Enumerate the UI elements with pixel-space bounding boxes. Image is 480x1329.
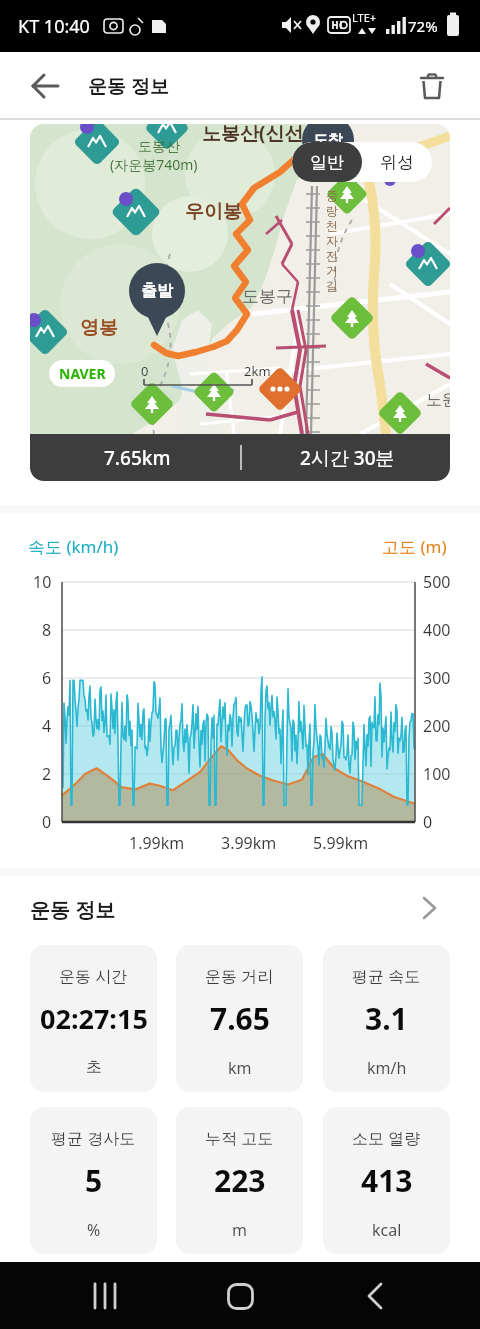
staticText: 2시간 30분 bbox=[300, 445, 395, 471]
staticText: (자운봉740m) bbox=[110, 155, 198, 174]
button[interactable]: 위성 bbox=[362, 142, 432, 182]
staticText: 운동 정보 bbox=[30, 896, 116, 923]
button[interactable] bbox=[24, 64, 68, 108]
staticText: 7.65 bbox=[210, 998, 270, 1039]
staticText: KT 10:40 bbox=[18, 14, 90, 39]
button[interactable]: 소모 열량 bbox=[323, 1107, 450, 1254]
staticText: 도봉구 bbox=[242, 286, 293, 307]
staticText: 노원 bbox=[426, 390, 450, 410]
staticText: 500 bbox=[423, 571, 451, 593]
button[interactable]: 노봉산(신선 bbox=[30, 124, 450, 481]
staticText: 평균 경사도 bbox=[51, 1127, 136, 1149]
staticText: 랑 bbox=[326, 203, 338, 218]
staticText: 2 bbox=[42, 763, 52, 785]
staticText: 1.99km bbox=[129, 832, 185, 854]
staticText: 소모 열량 bbox=[352, 1127, 421, 1149]
staticText: 300 bbox=[423, 667, 451, 689]
staticText: 도착 bbox=[313, 131, 343, 150]
button[interactable] bbox=[408, 62, 456, 110]
staticText: 영봉 bbox=[80, 316, 118, 340]
button[interactable] bbox=[351, 1272, 399, 1320]
staticText: 전 bbox=[326, 248, 338, 263]
button[interactable]: 평균 속도 bbox=[323, 945, 450, 1092]
staticText: 0 bbox=[141, 362, 149, 380]
staticText: NAVER bbox=[59, 364, 106, 383]
button[interactable] bbox=[408, 886, 452, 930]
staticText: 길 bbox=[326, 278, 338, 293]
staticText: % bbox=[87, 1219, 101, 1241]
staticText: 노봉산(신선 bbox=[202, 124, 304, 146]
button[interactable]: 평균 경사도 bbox=[30, 1107, 157, 1254]
staticText: 413 bbox=[361, 1160, 413, 1201]
staticText: 중 bbox=[326, 188, 338, 203]
staticText: 400 bbox=[423, 619, 451, 641]
staticText: 속도 (km/h) bbox=[28, 535, 119, 558]
staticText: 고도 (m) bbox=[382, 535, 447, 558]
staticText: m bbox=[232, 1219, 247, 1241]
button[interactable]: 운동 시간 bbox=[30, 945, 157, 1092]
staticText: 0 bbox=[42, 811, 52, 833]
staticText: 초 bbox=[86, 1057, 102, 1077]
staticText: 02:27:15 bbox=[40, 1000, 148, 1037]
button[interactable]: 누적 고도 bbox=[176, 1107, 303, 1254]
staticText: 거 bbox=[326, 263, 338, 278]
staticText: 운동 시간 bbox=[59, 965, 128, 987]
staticText: 우이봉 bbox=[185, 200, 242, 224]
staticText: 운동 거리 bbox=[205, 965, 274, 987]
staticText: LTE+ bbox=[352, 10, 377, 25]
staticText: 출발 bbox=[141, 281, 173, 301]
staticText: 200 bbox=[423, 715, 451, 737]
staticText: 100 bbox=[423, 763, 451, 785]
staticText: 위성 bbox=[380, 152, 414, 173]
button[interactable]: 운동 거리 bbox=[176, 945, 303, 1092]
staticText: 0 bbox=[423, 811, 433, 833]
staticText: 3.99km bbox=[221, 832, 277, 854]
staticText: 6 bbox=[42, 667, 52, 689]
button[interactable] bbox=[81, 1272, 129, 1320]
staticText: kcal bbox=[372, 1219, 402, 1241]
staticText: 223 bbox=[214, 1160, 266, 1201]
staticText: 5.99km bbox=[313, 832, 369, 854]
staticText: 일반 bbox=[310, 152, 344, 173]
staticText: 자 bbox=[326, 233, 338, 248]
staticText: 3.1 bbox=[365, 998, 408, 1039]
staticText: 72% bbox=[408, 16, 438, 36]
staticText: km bbox=[228, 1057, 252, 1079]
button[interactable]: 일반 bbox=[292, 142, 362, 182]
staticText: 7.65km bbox=[104, 445, 171, 471]
staticText: 5 bbox=[85, 1160, 103, 1201]
staticText: 도봉산 bbox=[138, 138, 180, 156]
staticText: 운동 정보 bbox=[88, 73, 169, 99]
staticText: 8 bbox=[42, 619, 52, 641]
staticText: km/h bbox=[367, 1057, 407, 1079]
staticText: 누적 고도 bbox=[205, 1127, 274, 1149]
staticText: 4 bbox=[42, 715, 52, 737]
staticText: 2km bbox=[244, 362, 271, 380]
button[interactable] bbox=[216, 1272, 264, 1320]
staticText: 천 bbox=[326, 218, 338, 233]
staticText: 10 bbox=[33, 571, 52, 593]
staticText: 평균 속도 bbox=[352, 965, 421, 987]
